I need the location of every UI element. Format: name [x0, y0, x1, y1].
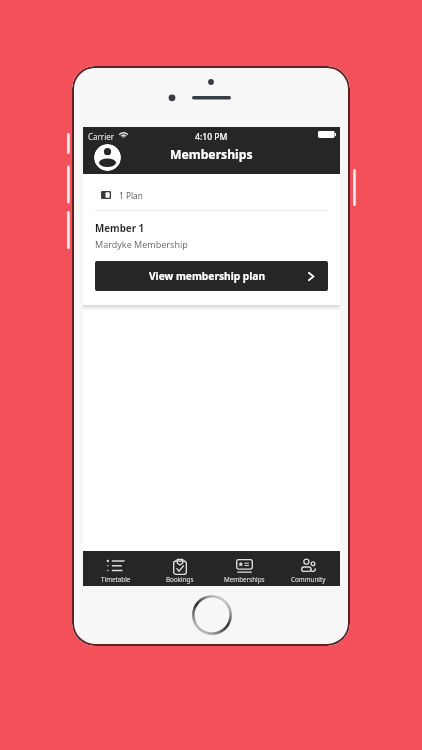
button[interactable]: Timetable: [83, 551, 148, 586]
button[interactable]: Community: [276, 551, 340, 586]
staticText: Memberships: [170, 146, 253, 163]
button[interactable]: Memberships: [212, 551, 276, 586]
staticText: Carrier: [88, 131, 115, 142]
staticText: Member 1: [95, 222, 145, 235]
staticText: Bookings: [166, 575, 194, 584]
button[interactable]: Account: [94, 144, 121, 171]
button[interactable]: Bookings: [148, 551, 212, 586]
staticText: Memberships: [224, 575, 265, 584]
button[interactable]: View membership plan: [95, 261, 328, 291]
staticText: Timetable: [101, 575, 131, 584]
staticText: 1 Plan: [119, 190, 143, 201]
staticText: Mardyke Membership: [95, 238, 188, 250]
staticText: Community: [291, 575, 326, 584]
staticText: 4:10 PM: [195, 131, 228, 143]
staticText: View membership plan: [149, 269, 266, 283]
